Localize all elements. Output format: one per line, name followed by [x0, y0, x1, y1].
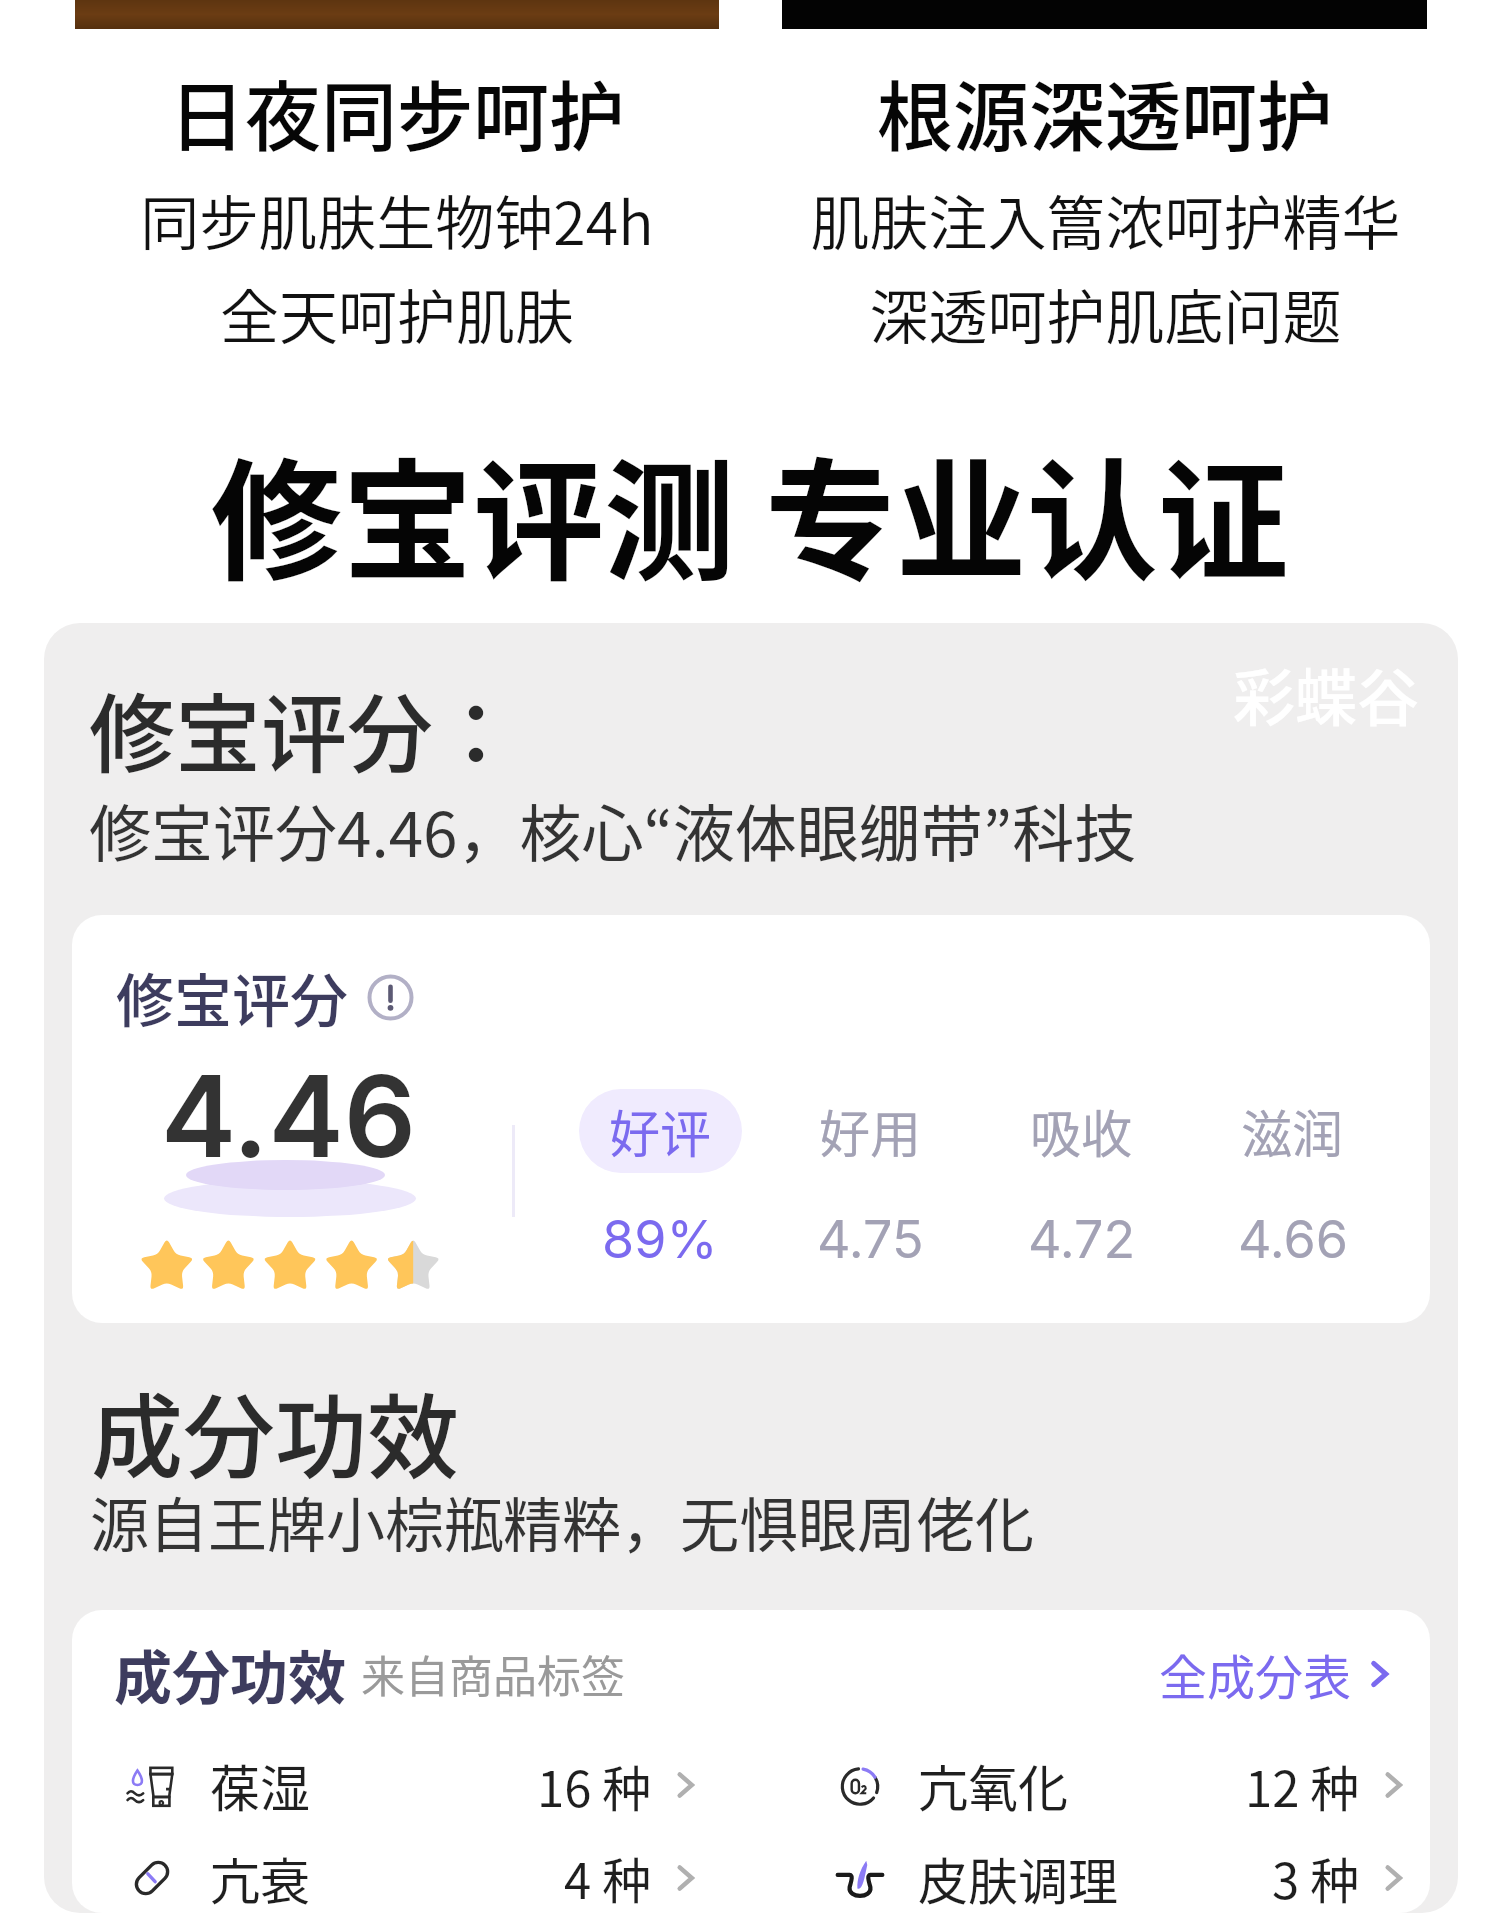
staticText: 源自王牌小棕瓶精粹，无惧眼周佬化 — [90, 1479, 1035, 1564]
button[interactable]: 亢衰 — [72, 1842, 722, 1913]
button[interactable]: 评分说明 — [367, 974, 414, 1021]
button[interactable]: 日夜同步呵护 — [74, 29, 720, 355]
staticText: 修宝评测 专业认证 — [211, 417, 1289, 607]
staticText: 皮肤调理 — [918, 1842, 1118, 1913]
staticText: 89% — [602, 1208, 718, 1271]
staticText: 同步肌肤生物钟24h 全天呵护肌肤 — [140, 177, 654, 355]
staticText: 16 种 — [537, 1750, 652, 1821]
staticText: 来自商品标签 — [361, 1642, 625, 1706]
staticText: 修宝评分4.46，核心“液体眼绷带”科技 — [89, 785, 1137, 875]
staticText: 肌肤注入篙浓呵护精华 深透呵护肌底问题 — [810, 177, 1401, 355]
staticText: 3 种 — [1272, 1842, 1360, 1913]
button[interactable]: 好评 — [579, 1089, 742, 1173]
staticText: 4.66 — [1238, 1208, 1348, 1271]
staticText: 亢衰 — [210, 1842, 310, 1913]
button[interactable]: 亢氧化 — [780, 1749, 1430, 1821]
staticText: 吸收 — [1030, 1094, 1133, 1168]
staticText: 4.46 — [161, 1048, 417, 1185]
staticText: 成分功效 — [91, 1364, 460, 1497]
button[interactable]: 4.72 — [976, 1208, 1187, 1271]
staticText: 根源深透呵护 — [877, 57, 1333, 167]
button[interactable]: 吸收 — [1000, 1089, 1163, 1173]
button[interactable]: 皮肤调理 — [780, 1842, 1430, 1913]
button[interactable]: 全成分表 — [1159, 1639, 1398, 1709]
button[interactable]: 根源深透呵护 — [782, 29, 1428, 355]
staticText: 滋润 — [1241, 1094, 1344, 1168]
button[interactable]: 滋润 — [1211, 1089, 1374, 1173]
staticText: 修宝评分 — [116, 955, 349, 1039]
staticText: 葆湿 — [210, 1749, 310, 1821]
staticText: 全成分表 — [1159, 1639, 1352, 1709]
button[interactable]: 好用 — [789, 1089, 952, 1173]
staticText: 日夜同步呵护 — [169, 57, 625, 167]
staticText: 12 种 — [1245, 1750, 1360, 1821]
button[interactable]: 4.66 — [1187, 1208, 1398, 1271]
staticText: 成分功效 — [114, 1632, 347, 1716]
button[interactable]: 4.75 — [765, 1208, 976, 1271]
staticText: 4.75 — [817, 1208, 924, 1271]
staticText: 修宝评分： — [89, 666, 519, 791]
staticText: 好评 — [609, 1094, 712, 1168]
staticText: 好用 — [819, 1094, 922, 1168]
staticText: 亢氧化 — [918, 1749, 1068, 1821]
staticText: 彩蝶谷 — [1233, 649, 1420, 739]
staticText: 4 种 — [564, 1842, 652, 1913]
button[interactable]: 葆湿 — [72, 1749, 722, 1821]
staticText: 4.72 — [1028, 1208, 1136, 1271]
button[interactable]: 89% — [555, 1208, 765, 1271]
